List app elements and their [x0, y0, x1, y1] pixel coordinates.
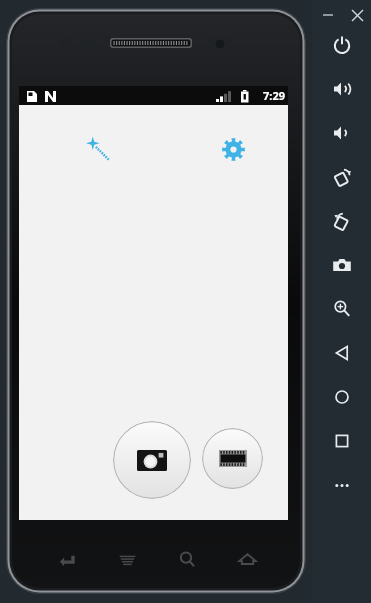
button[interactable]: Zoom: [329, 296, 355, 322]
button[interactable]: Search: [169, 541, 205, 577]
button[interactable]: Menu: [109, 541, 145, 577]
staticText: 7:29: [263, 88, 285, 103]
button[interactable]: Back: [49, 541, 85, 577]
button[interactable]: Power: [329, 32, 355, 58]
button[interactable]: Rotate left: [329, 165, 355, 191]
button[interactable]: Home: [229, 541, 265, 577]
button[interactable]: Effects: [74, 125, 122, 173]
button[interactable]: Close: [345, 3, 369, 27]
button[interactable]: Volume up: [329, 76, 355, 102]
button[interactable]: Home: [329, 384, 355, 410]
button[interactable]: Volume down: [329, 120, 355, 146]
button[interactable]: Overview: [329, 428, 355, 454]
button[interactable]: Back: [329, 340, 355, 366]
button[interactable]: Screenshot: [329, 252, 355, 278]
button[interactable]: Minimize: [316, 3, 340, 27]
button[interactable]: Settings: [209, 125, 257, 173]
button[interactable]: More: [329, 472, 355, 498]
button[interactable]: Rotate right: [329, 209, 355, 235]
button[interactable]: Take photo: [113, 421, 191, 499]
button[interactable]: Record video: [202, 428, 263, 489]
